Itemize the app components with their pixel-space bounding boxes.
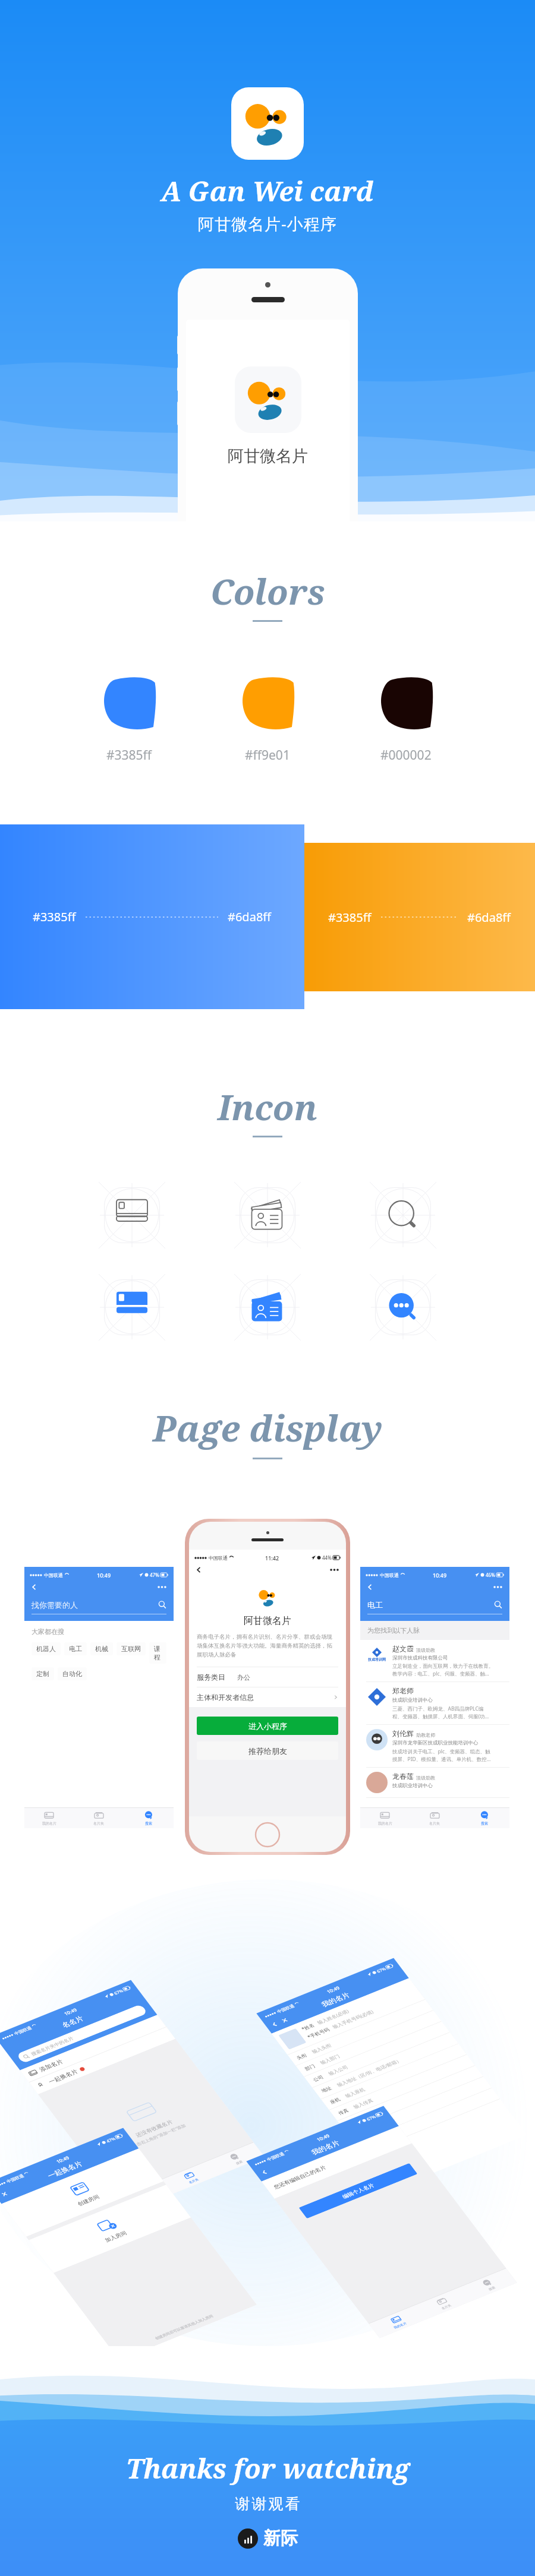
staticText: 10:49 — [97, 1572, 111, 1579]
staticText: 输入网址 — [385, 2139, 408, 2157]
button[interactable]: 名片夹 — [413, 2279, 474, 2327]
staticText: 阿甘微名片 — [244, 1615, 291, 1627]
staticText: 中国联通 — [380, 1572, 399, 1578]
staticText: 赵文霞 — [392, 1644, 414, 1653]
button[interactable]: 自动化 — [58, 1667, 87, 1680]
staticText: 大家都在搜 — [32, 1627, 64, 1636]
staticText: 技成培训关于电工、plc、变频器、组态、触 摸屏、PID、模拟量、通讯、单片机、… — [392, 1748, 491, 1763]
button[interactable]: 我的名片 — [24, 1808, 74, 1828]
button[interactable]: 龙春莲 — [366, 1772, 503, 1793]
staticText: 进入小程序 — [248, 1721, 287, 1731]
staticText: 搜索 — [487, 2285, 497, 2292]
staticText: 自动化 — [62, 1670, 82, 1678]
staticText: 创建房间 — [75, 2190, 102, 2211]
staticText: 电工 — [367, 1600, 383, 1610]
button[interactable]: 推荐给朋友 — [197, 1741, 338, 1760]
staticText: 搜索名片夹中的名片 — [29, 2028, 75, 2064]
staticText: #000002 — [380, 747, 432, 764]
button[interactable]: 机械 — [90, 1642, 113, 1655]
staticText: 44% — [322, 1554, 332, 1561]
button[interactable]: Back — [196, 1566, 203, 1573]
button[interactable]: More options — [329, 1567, 339, 1572]
button[interactable]: Back — [367, 1583, 374, 1591]
staticText: 添加名片 — [37, 2054, 66, 2077]
button[interactable]: 搜索 — [460, 1808, 509, 1828]
staticText: 服务类目 — [197, 1673, 225, 1681]
staticText: 主体和开发者信息 — [197, 1693, 254, 1702]
staticText: 67% — [365, 2112, 378, 2123]
staticText: 输入部门 — [318, 2050, 341, 2068]
staticText: 46% — [486, 1572, 495, 1578]
staticText: 搜索 — [234, 2159, 244, 2167]
staticText: 课程 — [154, 1645, 162, 1661]
staticText: 输入姓名(必填) — [315, 2003, 351, 2030]
button[interactable]: More options — [157, 1585, 167, 1589]
button[interactable]: Search filled icon — [370, 1274, 436, 1341]
staticText: 推荐给朋友 — [248, 1746, 287, 1756]
button[interactable]: 编辑个人名片 — [297, 2144, 419, 2237]
button[interactable]: 主体和开发者信息 — [197, 1693, 338, 1702]
staticText: 我的名片 — [378, 1821, 392, 1826]
staticText: 输入地址（区/街、电话/邮箱） — [335, 2046, 403, 2098]
staticText: Page display — [153, 1404, 383, 1452]
staticText: 67% — [112, 1986, 125, 1997]
staticText: #ff9e01 — [245, 747, 290, 764]
staticText: 名片夹 — [93, 1821, 104, 1826]
staticText: 67% — [375, 1964, 388, 1975]
button[interactable]: 我的名片 — [360, 1808, 410, 1828]
staticText: 深圳市龙华新区技成职业技能培训中心 — [392, 1740, 479, 1746]
button[interactable]: Name card holder outline icon — [234, 1182, 301, 1249]
staticText: 10:49 — [324, 1982, 342, 1997]
button[interactable]: Card outline icon — [99, 1182, 165, 1249]
button[interactable]: 名片夹 — [74, 1808, 124, 1828]
staticText: 立足制造业，面向互联网，致力于在线教育。 教学内容：电工、plc、伺服、变频器、… — [392, 1663, 493, 1677]
button[interactable]: 搜索 — [124, 1808, 174, 1828]
staticText: 传真 — [336, 2106, 350, 2117]
staticText: 为您找到以下人脉 — [367, 1626, 420, 1635]
staticText: 我的名片 — [319, 1986, 352, 2013]
button[interactable]: Search outline icon — [370, 1182, 436, 1249]
staticText: 输入微信号 — [360, 2103, 388, 2124]
staticText: 办公 — [237, 1673, 250, 1681]
staticText: 助教老师 — [416, 1732, 435, 1738]
staticText: 我的名片 — [392, 2319, 408, 2332]
staticText: Incon — [218, 1083, 317, 1130]
button[interactable]: Back — [31, 1583, 38, 1591]
button[interactable]: 名片夹 — [410, 1808, 460, 1828]
staticText: 机械 — [95, 1645, 108, 1653]
button[interactable]: 课程 — [149, 1642, 166, 1664]
staticText: 龙春莲 — [392, 1772, 414, 1781]
button[interactable]: 进入小程序 — [197, 1717, 338, 1735]
staticText: 网址 — [369, 2150, 384, 2162]
staticText: #3385ff — [33, 909, 76, 925]
staticText: *手机号码 — [305, 2023, 331, 2043]
button[interactable]: 刘伦辉 — [366, 1729, 503, 1763]
button[interactable]: 定制 — [32, 1667, 54, 1680]
staticText: Colors — [210, 568, 325, 615]
staticText: 阿甘微名片 — [228, 446, 308, 466]
button[interactable]: 郑老师 — [366, 1686, 503, 1720]
button[interactable]: 名片夹 — [160, 2153, 221, 2201]
button[interactable]: Card filled icon — [99, 1274, 165, 1341]
staticText: 加入房间 — [103, 2226, 129, 2247]
staticText: 座机 — [328, 2095, 342, 2106]
button[interactable]: 我的名片 — [367, 2297, 428, 2346]
staticText: 郑老师 — [392, 1686, 414, 1695]
staticText: 47% — [104, 2134, 117, 2145]
button[interactable]: More options — [493, 1585, 503, 1589]
staticText: *姓名 — [299, 2020, 316, 2034]
button[interactable]: 技成培训网 — [366, 1644, 503, 1677]
staticText: 机器人 — [36, 1645, 56, 1653]
button[interactable]: 互联网 — [117, 1642, 146, 1655]
button[interactable]: 搜索 — [458, 2261, 519, 2309]
staticText: 点击右上角的"添加一栏"添加 — [130, 2113, 188, 2157]
button[interactable]: 电工 — [64, 1642, 87, 1655]
staticText: 输入公司 — [326, 2061, 350, 2079]
staticText: 刘伦辉 — [392, 1729, 414, 1738]
button[interactable]: Name card holder filled icon — [234, 1274, 301, 1341]
staticText: 找你需要的人 — [32, 1600, 78, 1610]
button[interactable]: 我的名片 — [114, 2172, 175, 2220]
staticText: 技成职业培训中心 — [392, 1697, 433, 1703]
button[interactable]: 机器人 — [32, 1642, 61, 1655]
button[interactable]: 搜索 — [206, 2135, 267, 2183]
